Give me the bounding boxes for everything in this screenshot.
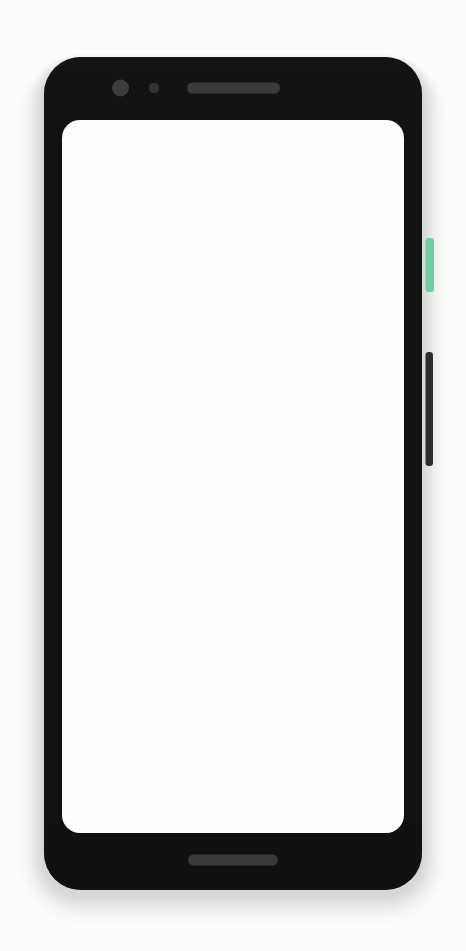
button[interactable]: Phone device preview [0, 0, 466, 951]
